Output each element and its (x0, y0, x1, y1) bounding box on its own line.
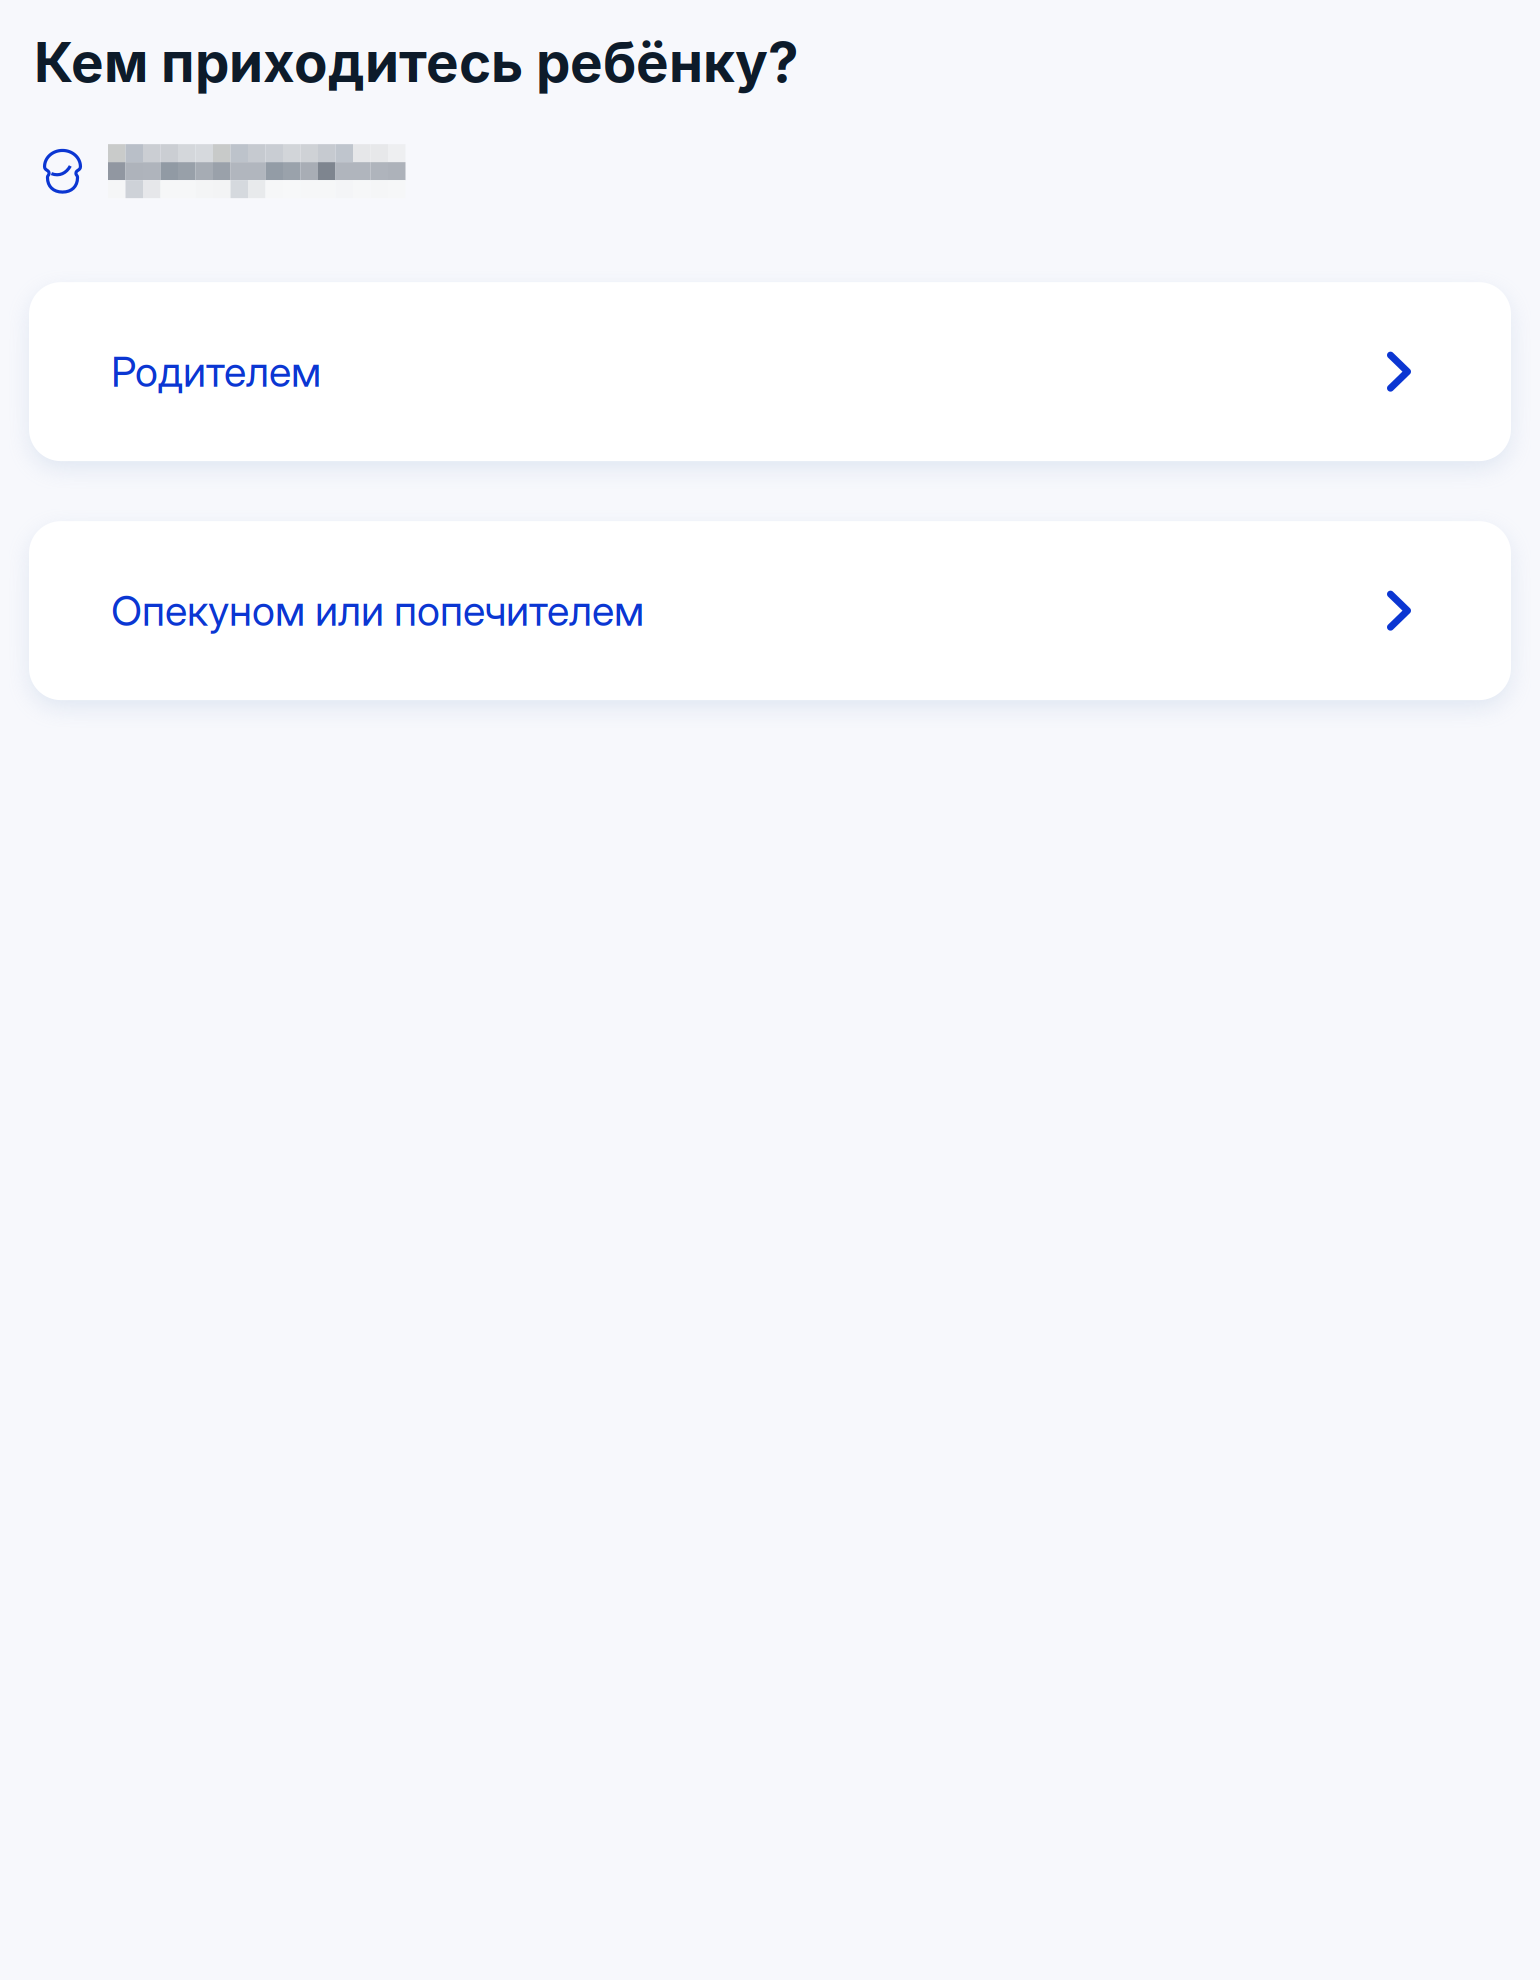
staticText: Кем приходитесь ребёнку? (34, 29, 799, 95)
staticText: Опекуном или попечителем (111, 586, 644, 636)
button[interactable]: Родителем (29, 282, 1511, 461)
staticText: Родителем (111, 347, 321, 397)
button[interactable]: Опекуном или попечителем (29, 521, 1511, 700)
